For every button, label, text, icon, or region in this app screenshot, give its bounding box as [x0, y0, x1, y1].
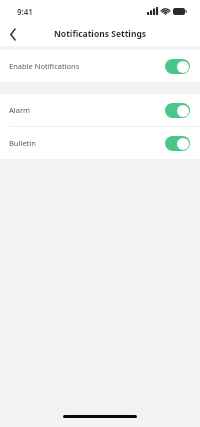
staticText: Bulletin: [9, 138, 36, 148]
button[interactable]: Toggle: [165, 59, 190, 74]
button[interactable]: Toggle: [165, 103, 190, 118]
button[interactable]: Alarm: [0, 94, 200, 126]
staticText: 9:41: [17, 6, 33, 17]
button[interactable]: Back: [0, 22, 26, 46]
button[interactable]: Bulletin: [0, 127, 200, 159]
button[interactable]: Enable Notifications: [0, 50, 200, 82]
staticText: Enable Notifications: [9, 61, 80, 71]
staticText: Notifications Settings: [0, 28, 200, 40]
staticText: Alarm: [9, 105, 31, 115]
button[interactable]: Toggle: [165, 136, 190, 151]
